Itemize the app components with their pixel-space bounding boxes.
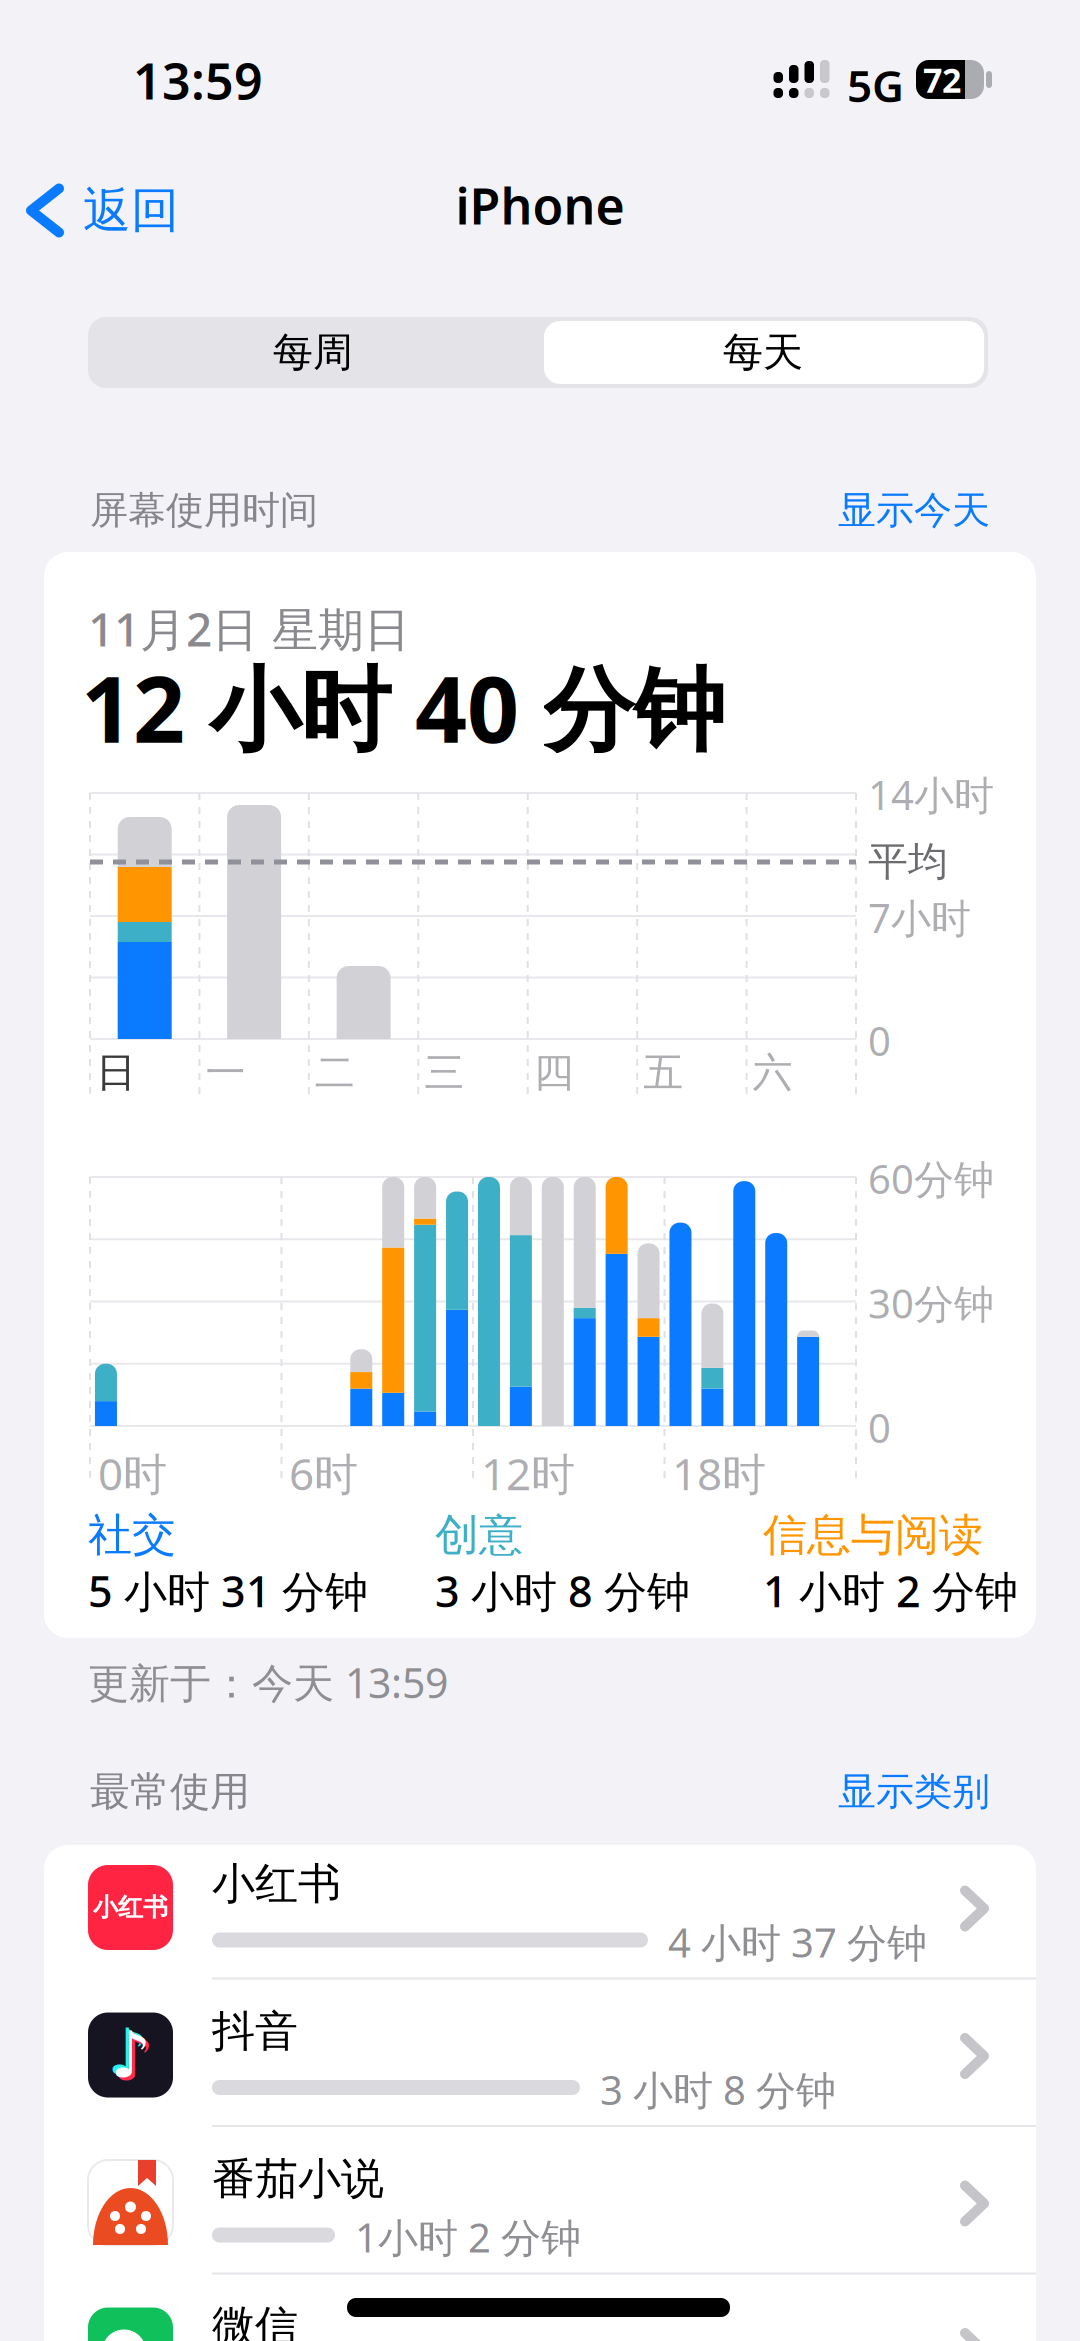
staticText: 13:59 (133, 47, 263, 113)
staticText: 一 (205, 1048, 245, 1097)
staticText: 12 小时 40 分钟 (81, 647, 725, 768)
staticText: 0时 (98, 1444, 167, 1502)
staticText: 微信 (212, 2300, 298, 2341)
staticText: 14小时 (868, 768, 994, 821)
staticText: 小红书 (93, 1892, 168, 1923)
staticText: 社交 (88, 1508, 176, 1562)
staticText: 显示今天 (838, 487, 990, 534)
button[interactable]: 显示今天 (838, 487, 990, 534)
staticText: 四 (534, 1048, 574, 1097)
staticText: 创意 (435, 1508, 523, 1562)
staticText: 0 (868, 1014, 891, 1067)
staticText: 屏幕使用时间 (90, 487, 318, 534)
staticText: 返回 (83, 181, 179, 240)
staticText: 4 小时 37 分钟 (668, 1915, 927, 1969)
staticText: 每天 (723, 328, 803, 377)
staticText: 11月2日 星期日 (88, 598, 410, 659)
staticText: 番茄小说 (212, 2152, 384, 2205)
staticText: 二 (315, 1048, 355, 1097)
staticText: 72 (923, 57, 961, 102)
staticText: 五 (643, 1048, 683, 1097)
staticText: 显示类别 (838, 1768, 990, 1815)
staticText: 18时 (672, 1444, 766, 1502)
staticText: 30分钟 (868, 1276, 994, 1330)
staticText: 1小时 2 分钟 (355, 2210, 581, 2264)
staticText: 日 (96, 1048, 136, 1097)
staticText: 平均 (868, 837, 948, 886)
staticText: 信息与阅读 (763, 1508, 983, 1562)
staticText: 3 小时 8 分钟 (600, 2063, 836, 2116)
staticText: 5 小时 31 分钟 (88, 1562, 368, 1619)
button[interactable]: 每周 (88, 317, 538, 388)
staticText: 60分钟 (868, 1152, 994, 1205)
staticText: 更新于：今天 13:59 (88, 1655, 448, 1709)
staticText: 0 (868, 1401, 891, 1454)
staticText: ♪ (113, 2022, 154, 2094)
staticText: 1 小时 2 分钟 (763, 1562, 1018, 1619)
staticText: ♪ (107, 2016, 148, 2088)
button[interactable]: 番茄小说 (44, 2139, 1036, 2287)
staticText: ♪ (110, 2019, 151, 2091)
staticText: 6时 (289, 1444, 358, 1502)
staticText: 最常使用 (90, 1767, 250, 1816)
staticText: 12时 (481, 1444, 575, 1502)
staticText: 抖音 (212, 2005, 298, 2058)
button[interactable]: 显示类别 (838, 1768, 990, 1815)
button[interactable]: 微信 (44, 2287, 1036, 2341)
staticText: 每周 (273, 328, 353, 377)
staticText: 三 (424, 1048, 464, 1097)
button[interactable]: 返回 (25, 181, 179, 240)
staticText: 小红书 (212, 1857, 341, 1910)
button[interactable]: 小红书 (44, 1844, 1036, 1992)
staticText: iPhone (455, 172, 624, 238)
staticText: 六 (753, 1048, 793, 1097)
staticText: 3 小时 8 分钟 (435, 1562, 690, 1619)
staticText: 5G (847, 56, 904, 114)
staticText: 7小时 (868, 891, 971, 944)
button[interactable]: 每天 (538, 317, 988, 388)
button[interactable]: ♪ (44, 1992, 1036, 2139)
